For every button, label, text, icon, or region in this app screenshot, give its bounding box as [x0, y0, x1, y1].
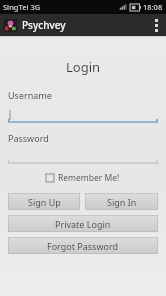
staticText: Password: [8, 132, 49, 144]
button[interactable]: More options: [146, 14, 166, 36]
button[interactable]: Remember Me!: [44, 170, 122, 186]
button[interactable]: Sign In: [85, 193, 158, 210]
staticText: Sign In: [107, 196, 137, 208]
button[interactable]: [8, 156, 158, 164]
staticText: 18:08: [143, 2, 163, 12]
staticText: Psychvey: [22, 18, 66, 32]
staticText: Remember Me!: [58, 172, 120, 184]
button[interactable]: Sign Up: [8, 193, 80, 210]
staticText: Private Login: [55, 218, 111, 230]
staticText: Login: [8, 58, 158, 76]
staticText: Sign Up: [28, 196, 61, 208]
staticText: SingTel 3G: [3, 2, 41, 12]
button[interactable]: Private Login: [8, 215, 158, 232]
button[interactable]: [8, 109, 158, 123]
staticText: Forgot Password: [47, 240, 119, 252]
button[interactable]: Forgot Password: [8, 237, 158, 254]
staticText: Username: [8, 89, 52, 101]
